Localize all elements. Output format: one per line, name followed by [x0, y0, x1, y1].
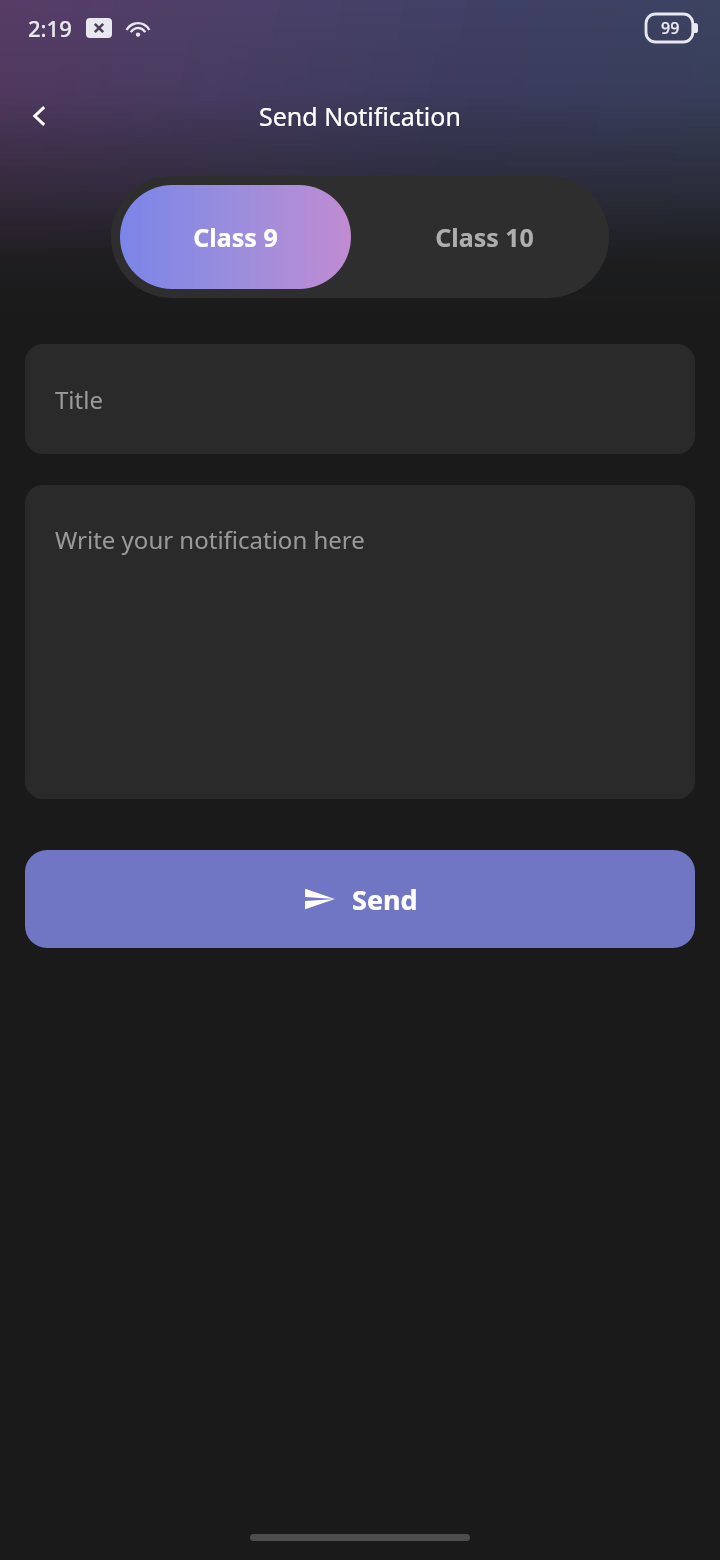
- staticText: Send Notification: [259, 99, 461, 133]
- button[interactable]: Write your notification here: [25, 485, 695, 799]
- staticText: Class 9: [193, 220, 278, 254]
- staticText: Title: [55, 383, 103, 416]
- staticText: 2:19: [28, 13, 72, 43]
- button[interactable]: Class 9: [120, 185, 351, 289]
- button[interactable]: Send: [25, 850, 695, 948]
- button[interactable]: Class 10: [369, 185, 600, 289]
- staticText: Send: [352, 881, 418, 918]
- staticText: 99: [661, 17, 680, 39]
- staticText: Class 10: [435, 220, 534, 254]
- button[interactable]: Title: [25, 344, 695, 454]
- button[interactable]: Back: [14, 90, 66, 142]
- staticText: Write your notification here: [55, 523, 365, 556]
